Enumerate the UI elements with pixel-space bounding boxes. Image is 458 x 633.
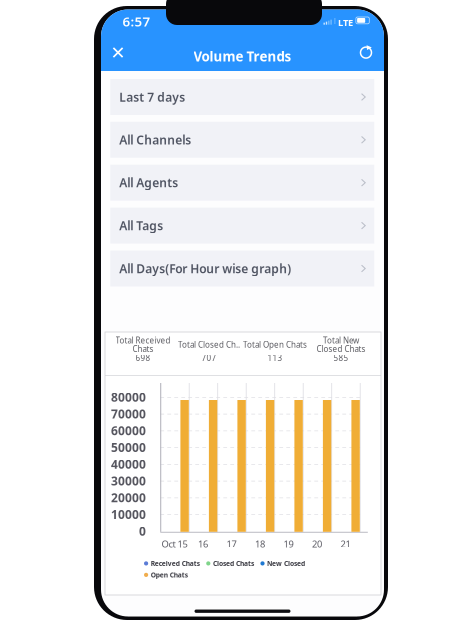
staticText: 60000 <box>111 422 146 438</box>
button[interactable]: Last 7 days <box>110 79 374 115</box>
staticText: All Agents <box>119 175 178 191</box>
button[interactable]: All Agents <box>110 165 374 201</box>
staticText: New Closed <box>267 559 305 568</box>
staticText: Total Open Chats <box>243 339 307 350</box>
staticText: Chats <box>132 344 153 354</box>
staticText: 21 <box>341 538 351 550</box>
staticText: 10000 <box>111 506 146 522</box>
staticText: Closed Chats <box>316 344 365 354</box>
staticText: LTE <box>338 16 353 28</box>
button[interactable]: All Channels <box>110 122 374 158</box>
staticText: 50000 <box>111 439 146 455</box>
staticText: Total Received <box>115 335 170 346</box>
staticText: 18 <box>255 538 265 550</box>
staticText: 30000 <box>111 473 146 489</box>
staticText: Open Chats <box>151 570 188 579</box>
staticText: 70000 <box>111 406 146 422</box>
staticText: All Channels <box>119 132 191 148</box>
staticText: All Days(For Hour wise graph) <box>119 260 291 276</box>
staticText: Volume Trends <box>193 47 291 65</box>
staticText: 707 <box>201 353 216 363</box>
staticText: 585 <box>333 353 348 363</box>
staticText: 6:57 <box>122 12 150 30</box>
staticText: 0 <box>139 523 146 539</box>
staticText: Received Chats <box>151 559 200 568</box>
staticText: 19 <box>284 538 294 550</box>
button[interactable]: All Days(For Hour wise graph) <box>110 250 374 286</box>
button[interactable]: Refresh <box>351 38 381 66</box>
staticText: Closed Chats <box>213 559 254 568</box>
staticText: All Tags <box>119 218 163 233</box>
button[interactable]: Close <box>103 38 133 66</box>
staticText: Total New <box>323 335 359 346</box>
staticText: 80000 <box>111 389 146 405</box>
staticText: Total Closed Ch.. <box>178 339 240 350</box>
button[interactable]: All Tags <box>110 208 374 244</box>
staticText: Oct 15 <box>162 538 188 550</box>
staticText: 698 <box>135 353 150 363</box>
staticText: 16 <box>198 538 208 550</box>
staticText: 20000 <box>111 489 146 505</box>
staticText: 40000 <box>111 456 146 472</box>
staticText: 17 <box>227 538 237 550</box>
staticText: Last 7 days <box>119 89 185 105</box>
staticText: 20 <box>312 538 322 550</box>
staticText: 113 <box>267 353 282 363</box>
